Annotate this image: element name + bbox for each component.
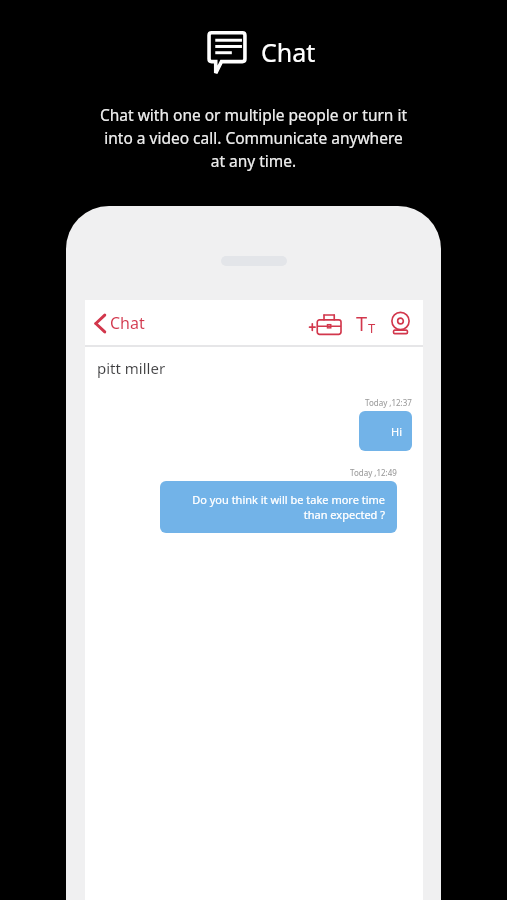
- staticText: Today ,12:49: [350, 467, 397, 478]
- staticText: Do you think it will be take more time t…: [172, 492, 385, 522]
- staticText: Chat: [110, 312, 145, 334]
- other: Chat: [204, 28, 250, 76]
- staticText: Today ,12:37: [365, 397, 412, 408]
- staticText: T: [356, 310, 368, 337]
- button[interactable]: Do you think it will be take more time t…: [160, 481, 397, 533]
- other: Back: [93, 313, 107, 334]
- staticText: Hi: [391, 424, 402, 439]
- button[interactable]: Text size: [352, 308, 380, 338]
- button[interactable]: Video call: [387, 308, 413, 338]
- button[interactable]: Back: [93, 312, 145, 334]
- staticText: T: [368, 319, 376, 337]
- staticText: Chat with one or multiple people or turn…: [63, 104, 444, 172]
- button[interactable]: Hi: [359, 411, 412, 451]
- staticText: Chat: [261, 35, 316, 69]
- staticText: pitt miller: [97, 358, 166, 378]
- button[interactable]: Chat: [204, 28, 316, 76]
- button[interactable]: Add case: [307, 308, 343, 338]
